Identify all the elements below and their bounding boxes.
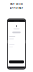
staticText: APPLE PAY [9,6,23,10]
staticText: PAY WITH [10,3,23,6]
